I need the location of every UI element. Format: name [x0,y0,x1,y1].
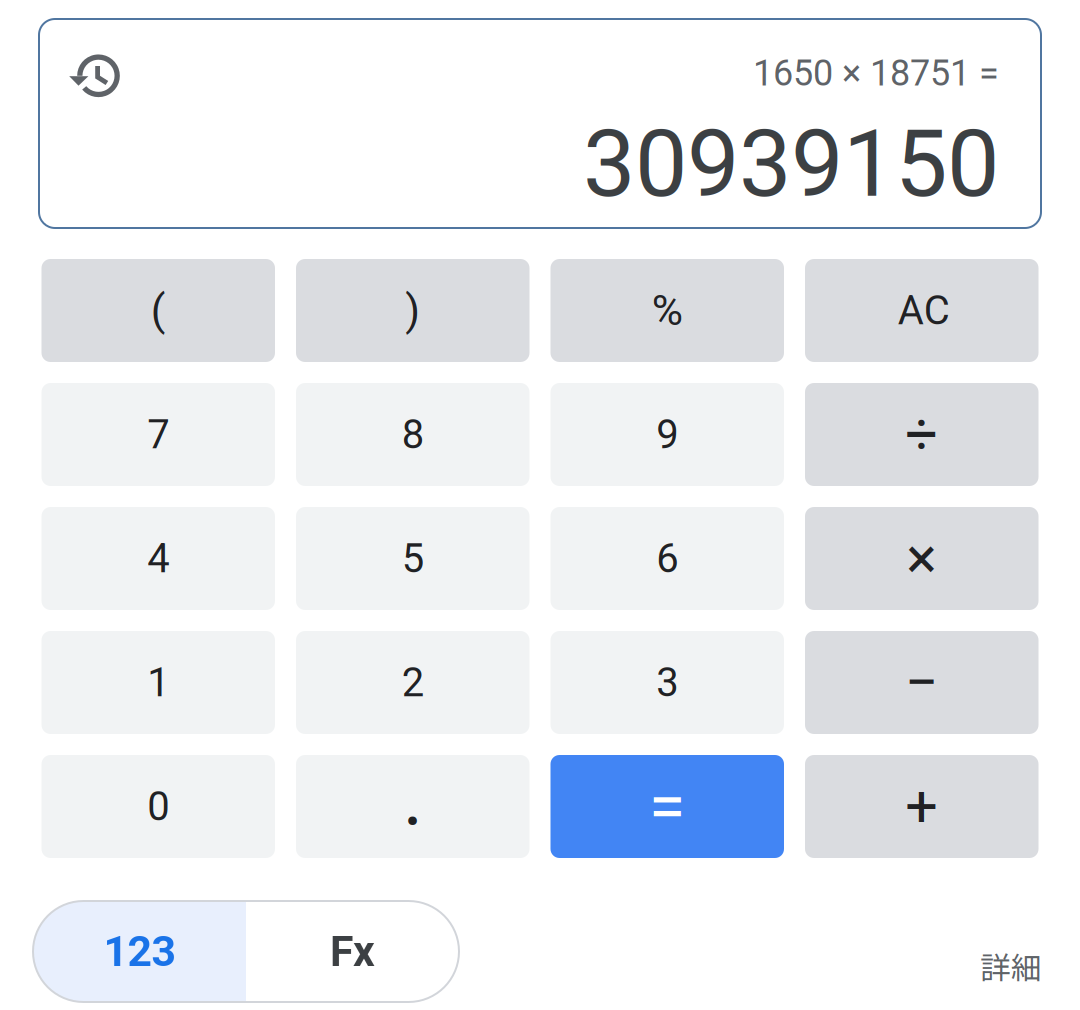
staticText: 9 [656,411,678,458]
button[interactable]: + [805,755,1038,858]
staticText: 5 [402,535,424,582]
button[interactable]: 4 [41,507,275,610]
staticText: ÷ [905,401,938,468]
staticText: − [905,648,939,717]
button[interactable]: AC [805,259,1038,362]
staticText: 1650 × 18751 = [753,52,999,94]
button[interactable]: ÷ [805,383,1038,486]
staticText: 30939150 [583,109,999,219]
staticText: % [652,285,683,335]
staticText: ( [151,285,166,335]
staticText: AC [898,287,950,334]
button[interactable]: 8 [296,383,529,486]
staticText: Fx [330,926,375,976]
staticText: 123 [103,926,175,976]
button[interactable]: 2 [296,631,529,734]
button[interactable]: ) [296,259,529,362]
staticText: ) [405,285,420,335]
staticText: 2 [402,659,424,706]
staticText: = [649,767,686,845]
button[interactable]: 詳細 [980,915,1042,988]
button[interactable]: ( [41,259,275,362]
staticText: 3 [656,659,678,706]
staticText: . [403,753,423,844]
button[interactable]: × [805,507,1038,610]
button[interactable]: 7 [41,383,275,486]
staticText: 4 [147,535,169,582]
staticText: 7 [147,411,169,458]
button[interactable]: − [805,631,1038,734]
staticText: 8 [402,411,424,458]
button[interactable]: 0 [41,755,275,858]
button[interactable]: = [550,755,784,858]
button[interactable]: 1 [41,631,275,734]
staticText: 6 [656,535,678,582]
button[interactable]: % [550,259,784,362]
button[interactable]: 5 [296,507,529,610]
button[interactable]: 6 [550,507,784,610]
button[interactable]: 9 [550,383,784,486]
button[interactable]: 3 [550,631,784,734]
staticText: + [905,773,938,840]
button[interactable]: 123 [33,901,246,1002]
staticText: 詳細 [980,944,1042,988]
button[interactable]: Fx [246,901,459,1002]
staticText: × [906,525,937,592]
button[interactable]: History [39,19,125,102]
staticText: 1 [147,659,169,706]
button[interactable]: . [296,755,529,858]
staticText: 0 [147,783,169,830]
